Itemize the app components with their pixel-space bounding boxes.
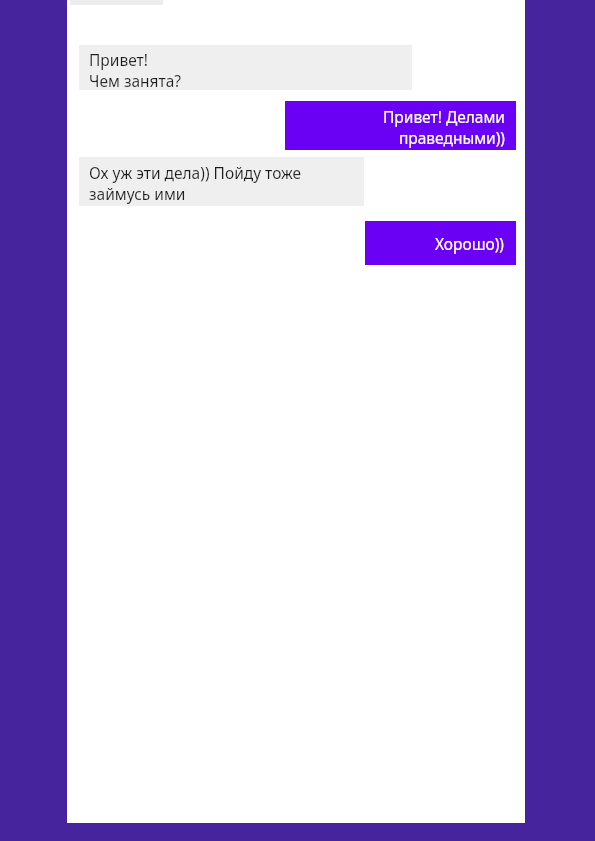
staticText: Чем занята? — [89, 70, 182, 90]
button[interactable]: Привет! — [79, 45, 412, 90]
button[interactable]: Ох уж эти дела)) Пойду тоже — [79, 157, 364, 206]
staticText: Привет! — [89, 49, 148, 70]
staticText: праведными)) — [398, 127, 505, 148]
staticText: Привет! Делами — [382, 106, 505, 127]
button[interactable]: Привет! Делами — [285, 101, 516, 150]
staticText: займусь ими — [89, 183, 186, 204]
staticText: Ох уж эти дела)) Пойду тоже — [89, 162, 302, 183]
button[interactable]: Хорошо)) — [365, 221, 516, 265]
staticText: Хорошо)) — [434, 233, 504, 254]
